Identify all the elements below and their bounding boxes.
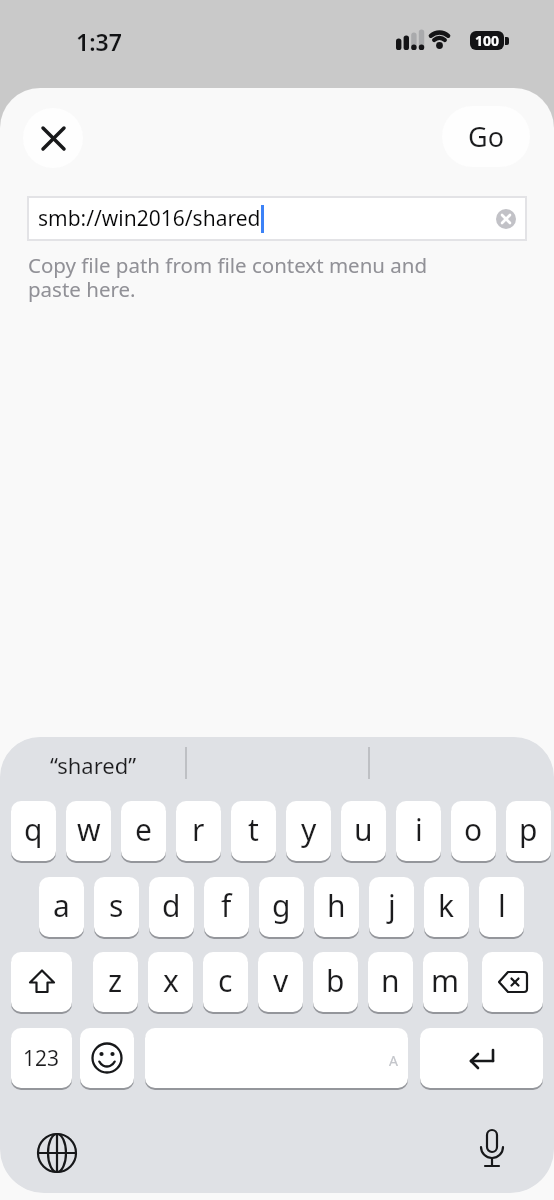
staticText: 1:37 [76,26,122,57]
button[interactable] [482,952,543,1012]
staticText: g [272,885,291,926]
button[interactable]: v [258,952,303,1012]
staticText: k [438,885,455,926]
staticText: r [192,809,205,850]
staticText: t [248,809,259,850]
button[interactable]: b [313,952,358,1012]
staticText: z [108,960,123,1001]
button[interactable]: x [148,952,193,1012]
button[interactable]: n [368,952,413,1012]
button[interactable] [30,1126,84,1180]
button[interactable]: h [314,877,359,937]
staticText: d [162,885,181,926]
button[interactable]: z [93,952,138,1012]
staticText: c [218,960,233,1001]
staticText: j [388,885,396,926]
button[interactable]: w [66,801,111,861]
button[interactable]: o [451,801,496,861]
button[interactable]: e [121,801,166,861]
staticText: i [415,809,423,850]
button[interactable]: k [424,877,469,937]
staticText: n [381,960,400,1001]
button[interactable]: m [423,952,468,1012]
button[interactable]: i [396,801,441,861]
staticText: w [77,809,101,850]
button[interactable]: g [259,877,304,937]
button[interactable]: A [145,1028,408,1088]
button[interactable]: c [203,952,248,1012]
button[interactable]: l [479,877,524,937]
staticText: p [519,809,538,850]
staticText: a [53,885,70,926]
button[interactable]: a [39,877,84,937]
button[interactable]: q [11,801,56,861]
button[interactable]: 123 [11,1028,72,1088]
staticText: Copy file path from file context menu an… [28,251,428,303]
staticText: smb://win2016/shared [38,204,261,233]
button[interactable] [80,1028,134,1088]
staticText: y [301,809,317,850]
staticText: Go [468,118,504,155]
button[interactable] [420,1028,543,1088]
button[interactable]: Go [442,106,530,167]
button[interactable] [496,209,516,229]
button[interactable]: j [369,877,414,937]
button[interactable]: smb://win2016/shared [27,196,527,241]
button[interactable]: r [176,801,221,861]
staticText: A [389,1051,398,1070]
staticText: 100 [475,31,500,50]
button[interactable] [466,1125,518,1177]
staticText: l [498,885,506,926]
staticText: v [273,960,289,1001]
staticText: 123 [23,1044,60,1073]
staticText: s [109,885,124,926]
button[interactable]: u [341,801,386,861]
button[interactable]: f [204,877,249,937]
staticText: o [464,809,483,850]
button[interactable]: y [286,801,331,861]
staticText: q [24,809,43,850]
button[interactable]: s [94,877,139,937]
staticText: b [326,960,345,1001]
staticText: m [431,960,460,1001]
staticText: f [221,885,232,926]
button[interactable]: p [506,801,551,861]
button[interactable]: t [231,801,276,861]
staticText: e [135,809,152,850]
staticText: x [163,960,179,1001]
staticText: u [354,809,373,850]
staticText: “shared” [50,750,137,780]
button[interactable]: “shared” [0,737,185,795]
button[interactable] [23,108,83,168]
staticText: h [327,885,346,926]
button[interactable] [11,952,72,1012]
button[interactable]: d [149,877,194,937]
